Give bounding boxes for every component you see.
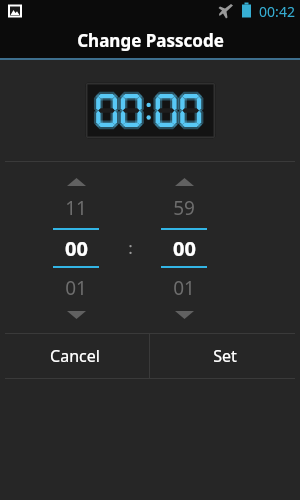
staticText: Change Passcode [77,29,224,52]
staticText: 00:42 [259,2,295,21]
button[interactable]: Cancel [0,334,149,378]
staticText: Cancel [50,345,100,367]
button[interactable]: 00 [154,230,214,266]
staticText: 00 [173,235,196,262]
staticText: : [128,236,133,259]
button[interactable]: Set [150,334,300,378]
staticText: 59 [173,195,195,221]
button[interactable]: Increment Minutes [154,168,214,195]
staticText: 00 [65,235,88,262]
button[interactable]: Increment Hours [46,168,106,195]
staticText: 01 [65,275,87,301]
staticText: 01 [173,275,195,301]
staticText: Set [213,345,237,367]
button[interactable]: Decrement Minutes [154,301,214,328]
button[interactable]: Decrement Hours [46,301,106,328]
staticText: 11 [65,195,87,221]
button[interactable]: 00 [46,230,106,266]
